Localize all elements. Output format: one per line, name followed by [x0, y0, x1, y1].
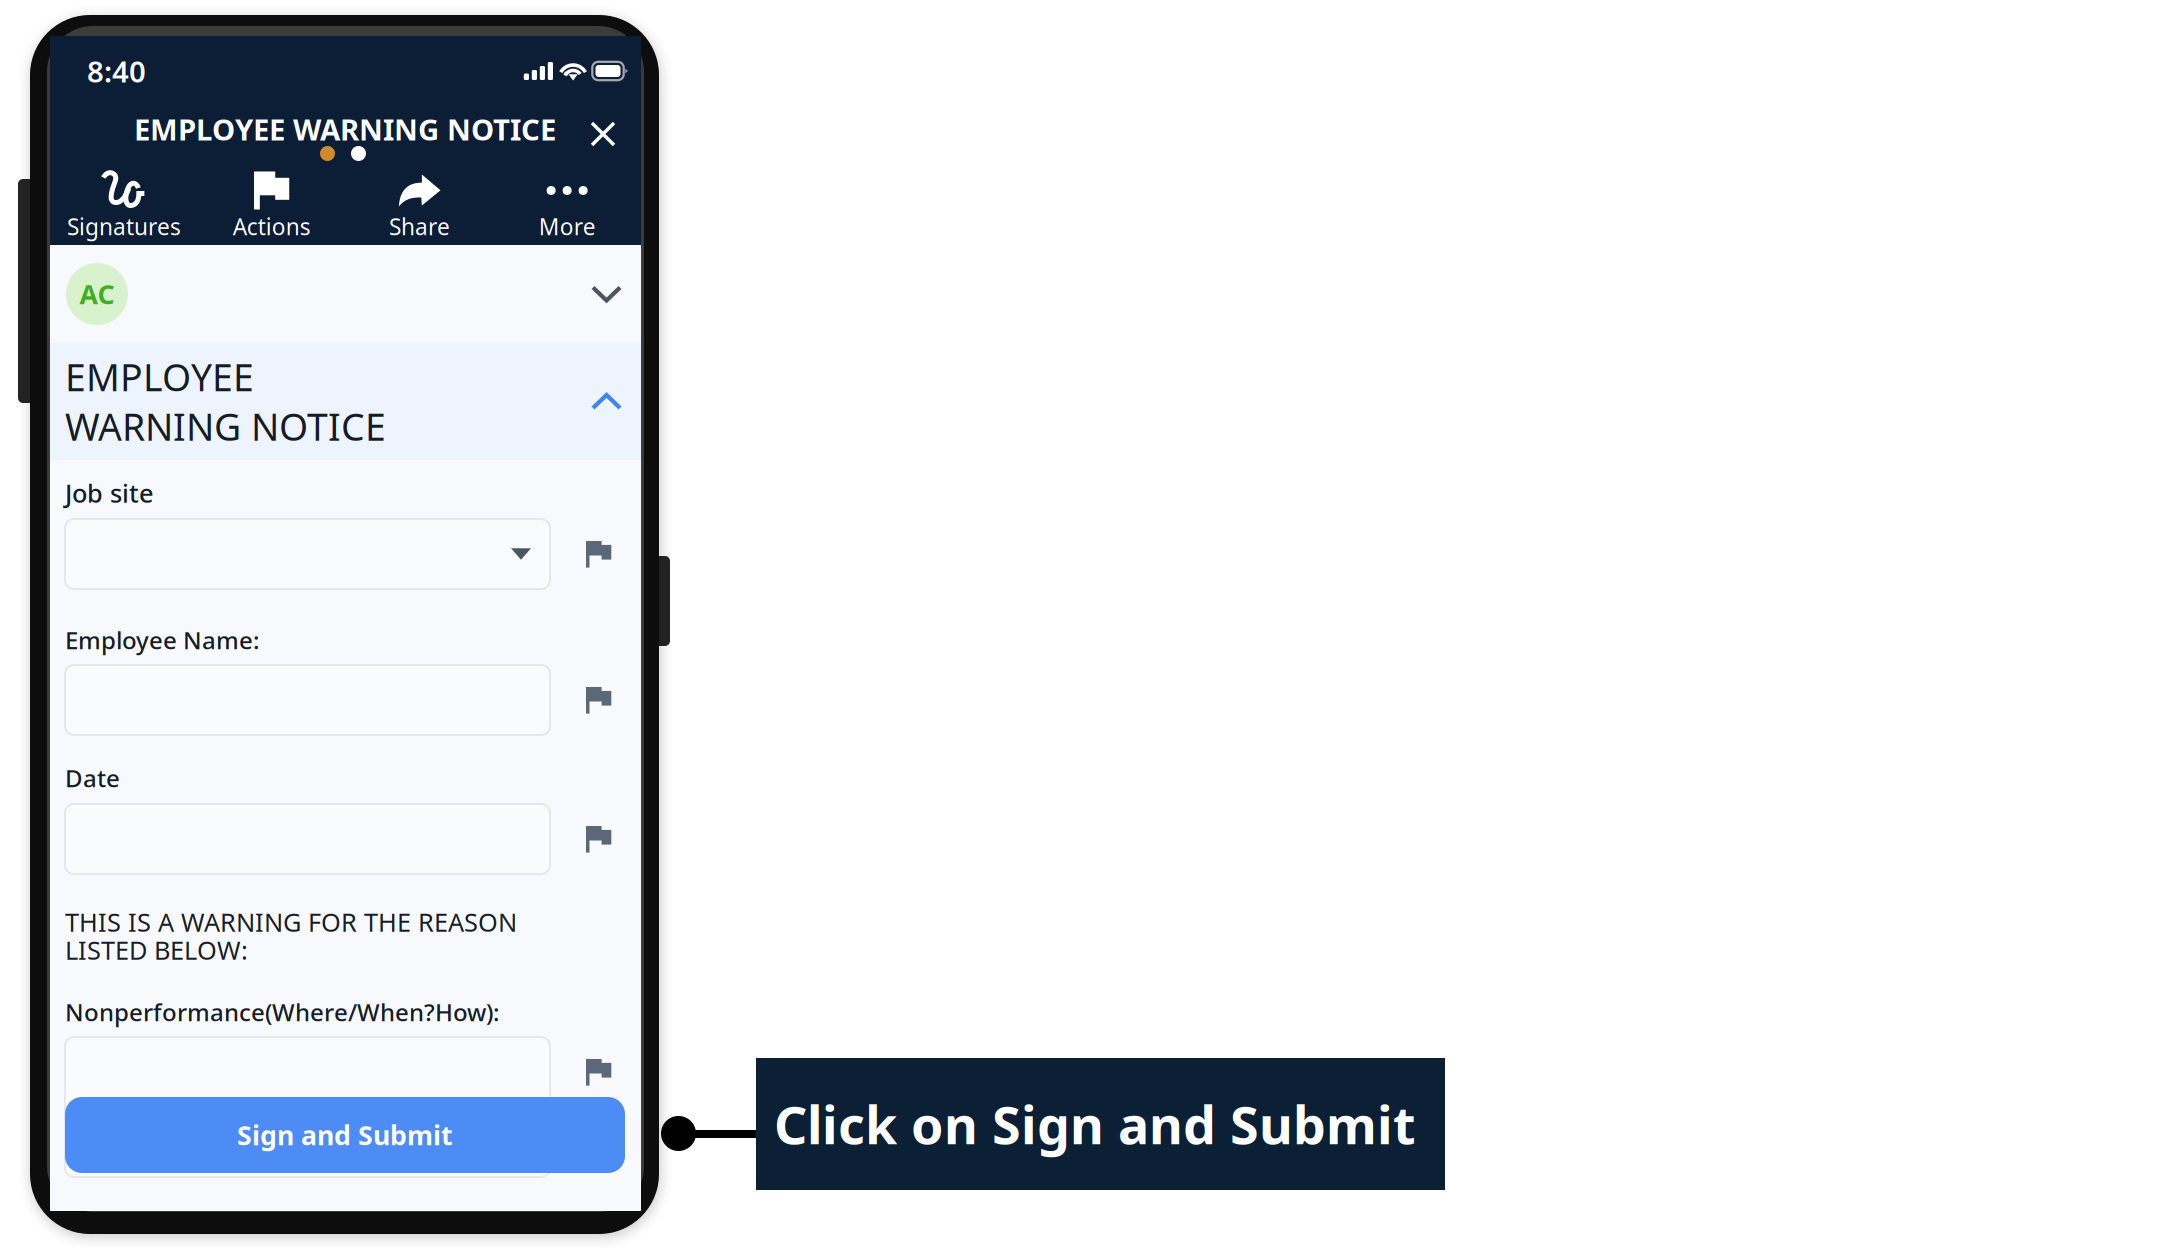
button[interactable]: Date	[65, 804, 550, 874]
staticText: EMPLOYEE WARNING NOTICE	[134, 109, 556, 148]
staticText: THIS IS A WARNING FOR THE REASON	[65, 905, 517, 939]
staticText: Date	[65, 762, 120, 794]
button[interactable]: Nonperformance	[65, 1037, 550, 1177]
staticText: EMPLOYEE WARNING NOTICE	[65, 352, 386, 451]
staticText: Job site	[65, 476, 154, 510]
staticText: Employee Name:	[65, 624, 260, 656]
staticText: AC	[79, 276, 114, 312]
button[interactable]: Flag Date	[550, 804, 611, 853]
staticText: 8:40	[87, 51, 146, 90]
button[interactable]: Flag Nonperformance	[550, 1037, 611, 1086]
button[interactable]: Flag Job site	[550, 519, 611, 568]
button[interactable]: Job site	[65, 519, 550, 589]
button[interactable]: Share	[345, 170, 493, 240]
staticText: Signatures	[67, 211, 181, 241]
button[interactable]: Flag Employee Name	[550, 665, 611, 714]
button[interactable]: Employee Name	[65, 665, 550, 735]
staticText: Share	[389, 211, 450, 241]
button[interactable]: More	[493, 170, 641, 240]
staticText: Sign and Submit	[237, 1117, 453, 1153]
staticText: Click on Sign and Submit	[774, 1089, 1416, 1159]
button[interactable]: Signatures	[50, 170, 198, 240]
staticText: More	[539, 211, 596, 241]
button[interactable]: Sign and Submit	[65, 1097, 625, 1173]
button[interactable]: Actions	[198, 170, 346, 240]
staticText: LISTED BELOW:	[65, 933, 248, 967]
button[interactable]: AC	[50, 245, 641, 343]
staticText: Actions	[233, 211, 311, 241]
button[interactable]: EMPLOYEE WARNING NOTICE	[50, 343, 641, 460]
staticText: Nonperformance(Where/When?How):	[65, 996, 500, 1028]
button[interactable]: Close	[576, 107, 630, 161]
